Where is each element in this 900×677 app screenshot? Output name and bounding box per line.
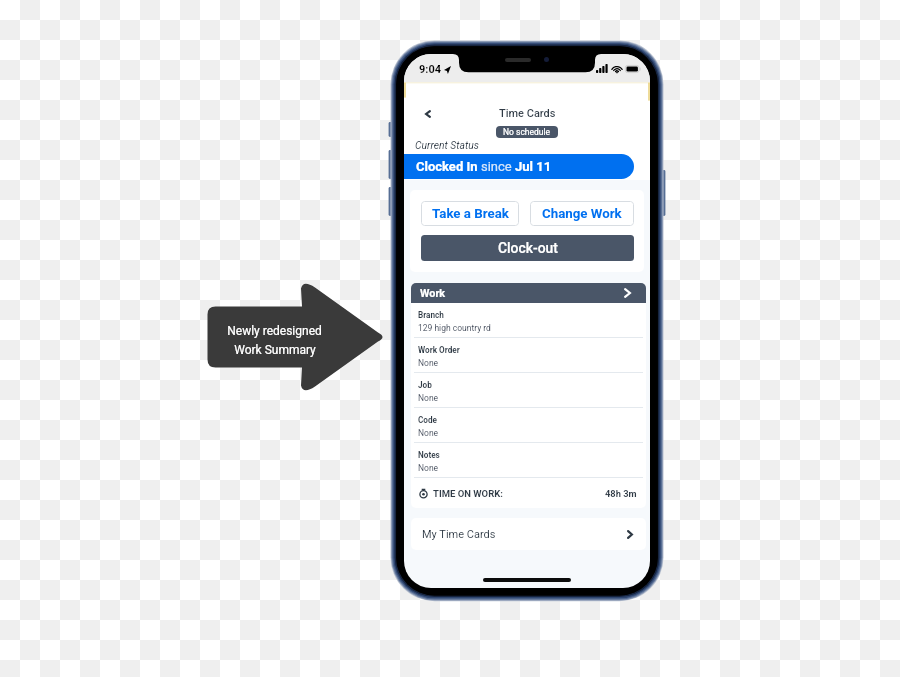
staticText: No schedule: [503, 127, 551, 137]
button[interactable]: Change Work: [530, 201, 634, 226]
button[interactable]: Back: [416, 102, 440, 126]
staticText: Current Status: [415, 139, 479, 151]
staticText: None: [418, 428, 439, 438]
staticText: 48h 3m: [605, 488, 637, 499]
staticText: Work Order: [418, 345, 460, 355]
staticText: Clock-out: [498, 240, 558, 256]
staticText: Clocked In: [416, 159, 481, 174]
staticText: Branch: [418, 310, 444, 320]
staticText: Code: [418, 415, 438, 425]
staticText: Work Summary: [234, 343, 316, 357]
staticText: None: [418, 393, 439, 403]
staticText: Jul 11: [515, 159, 552, 174]
button[interactable]: Work: [411, 283, 646, 303]
staticText: Take a Break: [432, 206, 509, 222]
button[interactable]: Clock-out: [421, 235, 634, 261]
staticText: Time Cards: [499, 107, 556, 120]
staticText: Newly redesigned: [227, 324, 322, 338]
staticText: My Time Cards: [422, 528, 496, 541]
button[interactable]: Clocked In: [404, 154, 634, 179]
staticText: Notes: [418, 450, 440, 460]
button[interactable]: Take a Break: [421, 201, 519, 226]
staticText: Work: [420, 287, 446, 300]
staticText: since: [481, 159, 515, 174]
staticText: TIME ON WORK:: [433, 488, 503, 499]
button[interactable]: My Time Cards: [411, 518, 646, 550]
staticText: 9:04: [419, 63, 442, 76]
staticText: None: [418, 358, 439, 368]
button[interactable]: No schedule: [496, 126, 558, 138]
staticText: Change Work: [542, 206, 622, 222]
staticText: Job: [418, 380, 432, 390]
staticText: None: [418, 463, 439, 473]
staticText: 129 high country rd: [418, 323, 491, 333]
